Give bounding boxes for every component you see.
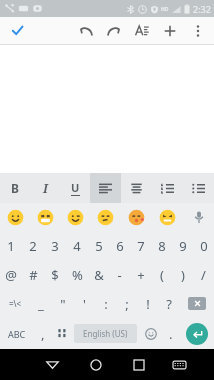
button[interactable]: _ [30,289,52,318]
staticText: 5 [95,237,103,255]
button[interactable]: More options [184,17,212,44]
button[interactable]: / [193,260,214,289]
button[interactable]: ? [158,289,179,318]
button[interactable]: Formatting [128,17,156,44]
staticText: 1 [7,237,15,255]
button[interactable]: - [109,260,130,289]
button[interactable]: 6 [109,231,130,260]
staticText: ABC [8,328,26,340]
button[interactable]: Italic [30,173,60,203]
staticText: ' [83,295,86,313]
button[interactable]: Align center [121,173,152,203]
staticText: ! [146,295,150,313]
button[interactable]: Numbered list [152,173,183,203]
button[interactable]: @ [0,260,22,289]
staticText: 6 [116,237,124,255]
staticText: 3 [51,237,59,255]
button[interactable]: Emoji [140,318,162,349]
button[interactable]: Emoji 3 [90,203,121,231]
staticText: ( [160,266,164,284]
button[interactable]: Redo [100,17,128,44]
button[interactable]: Undo [72,17,100,44]
staticText: 0 [200,237,208,255]
button[interactable]: & [88,260,109,289]
button[interactable]: Emoji 0 [0,203,30,231]
button[interactable]: Bold [0,173,30,203]
staticText: / [201,266,206,284]
button[interactable]: 2 [22,231,44,260]
button[interactable]: 0 [193,231,214,260]
staticText: U [71,180,80,195]
button[interactable]: ABC [0,318,33,349]
button[interactable]: " [52,289,74,318]
staticText: ; [125,295,129,313]
staticText: B [11,180,19,196]
staticText: " [60,295,66,313]
staticText: $ [51,266,59,284]
button[interactable]: Bulleted list [183,173,214,203]
staticText: _ [38,295,44,313]
button[interactable]: ; [116,289,137,318]
button[interactable]: Emoji 4 [121,203,152,231]
button[interactable]: Recents [117,349,160,380]
staticText: 9 [179,237,187,255]
button[interactable]: ( [151,260,172,289]
staticText: 2:32 [193,3,211,15]
button[interactable]: 3 [44,231,66,260]
button[interactable]: Underline [60,173,90,203]
staticText: HD [161,6,169,13]
button[interactable]: Home [74,349,117,380]
staticText: 2 [29,237,37,255]
button[interactable]: Backspace [179,289,214,318]
staticText: English (US) [83,328,128,339]
button[interactable]: Enter [180,318,214,349]
button[interactable]: Done [0,17,34,44]
staticText: & [94,266,104,284]
button[interactable]: ' [74,289,95,318]
button[interactable]: 1 [0,231,22,260]
staticText: - [117,266,122,284]
button[interactable]: 4 [66,231,88,260]
button[interactable]: Emoji 5 [152,203,183,231]
button[interactable]: ) [172,260,193,289]
button[interactable]: , [33,318,52,349]
button[interactable]: . [162,318,180,349]
button[interactable]: Align left [90,173,121,203]
button[interactable]: Voice input [183,203,214,231]
staticText: + [137,266,145,284]
button[interactable]: Add [156,17,184,44]
staticText: I [43,180,48,196]
staticText: @ [5,266,17,284]
button[interactable]: Emoji 2 [60,203,90,231]
staticText: # [29,266,38,284]
staticText: . [169,325,173,343]
button[interactable]: + [130,260,151,289]
button[interactable]: % [66,260,88,289]
button[interactable]: ! [137,289,158,318]
staticText: % [72,266,83,284]
staticText: 4 [73,237,81,255]
button[interactable]: Numbers [52,318,71,349]
button[interactable]: 7 [130,231,151,260]
button[interactable]: 5 [88,231,109,260]
staticText: ) [181,266,185,284]
button[interactable]: 8 [151,231,172,260]
button[interactable]: =\< [0,289,30,318]
staticText: 7 [137,237,145,255]
button[interactable]: $ [44,260,66,289]
button[interactable]: English (US) [74,324,137,343]
staticText: ? [166,295,172,313]
button[interactable]: # [22,260,44,289]
staticText: =\< [9,298,22,309]
staticText: , [41,325,45,343]
button[interactable]: : [95,289,116,318]
button[interactable]: Switch keyboard [160,349,199,380]
staticText: 8 [158,237,166,255]
button[interactable]: Hide keyboard [31,349,74,380]
button[interactable]: 9 [172,231,193,260]
button[interactable]: Emoji 1 [30,203,60,231]
staticText: : [104,295,108,313]
